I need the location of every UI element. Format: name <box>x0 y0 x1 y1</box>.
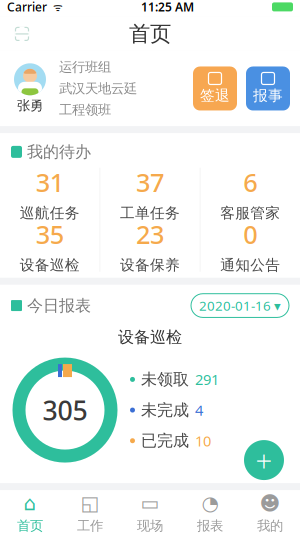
button[interactable]: 0 <box>201 220 300 272</box>
staticText: Carrier <box>7 0 47 15</box>
staticText: ◔ <box>201 492 218 515</box>
staticText: 今日报表 <box>27 296 91 315</box>
button[interactable]: ◱ <box>60 490 120 533</box>
staticText: 10 <box>195 431 211 450</box>
staticText: 设备巡检 <box>20 256 80 274</box>
button[interactable]: 6 <box>201 168 300 220</box>
button[interactable]: 31 <box>0 168 99 220</box>
staticText: 未领取 <box>141 370 189 389</box>
staticText: 37 <box>136 165 164 199</box>
staticText: 2020-01-16 ▾ <box>199 297 281 314</box>
button[interactable]: 2020-01-16 ▾ <box>191 294 289 317</box>
button[interactable]: 35 <box>0 220 99 272</box>
staticText: 设备保养 <box>120 256 180 274</box>
staticText: 已完成 <box>141 431 189 451</box>
staticText: 我的待办 <box>27 142 91 162</box>
staticText: ◱ <box>80 492 99 515</box>
staticText: 我的 <box>257 518 283 533</box>
button[interactable]: 37 <box>100 168 200 220</box>
staticText: 工单任务 <box>120 204 180 222</box>
staticText: 巡航任务 <box>20 204 80 222</box>
staticText: 首页 <box>129 21 171 47</box>
button[interactable]: 23 <box>100 220 200 272</box>
button[interactable]: ◔ <box>180 490 240 533</box>
staticText: 6 <box>243 165 257 199</box>
staticText: 报事 <box>253 86 283 104</box>
staticText: 客服管家 <box>220 204 280 222</box>
staticText: 23 <box>136 217 164 251</box>
staticText: ▭ <box>140 492 159 515</box>
staticText: 未完成 <box>141 400 189 420</box>
staticText: 现场 <box>137 518 163 533</box>
staticText: 设备巡检 <box>118 327 182 347</box>
staticText: 工程领班 <box>59 102 111 118</box>
staticText: ☻ <box>259 492 280 515</box>
button[interactable]: 报事 <box>246 66 290 110</box>
button[interactable]: 新增 <box>244 440 284 480</box>
staticText: 报表 <box>197 518 223 533</box>
staticText: 工作 <box>77 518 103 533</box>
staticText: 4 <box>195 400 203 420</box>
staticText: 签退 <box>200 86 230 104</box>
button[interactable]: 签退 <box>193 66 237 110</box>
button[interactable]: ▭ <box>120 490 180 533</box>
staticText: 通知公告 <box>220 256 280 274</box>
staticText: 0 <box>243 217 257 251</box>
staticText: ⌂ <box>23 492 36 515</box>
staticText: 首页 <box>17 518 43 533</box>
staticText: 35 <box>36 217 64 251</box>
staticText: 305 <box>42 392 87 428</box>
button[interactable]: ⌂ <box>0 490 60 533</box>
staticText: 11:25 AM <box>141 0 194 15</box>
button[interactable]: ☻ <box>240 490 300 533</box>
staticText: 张勇 <box>17 97 43 114</box>
staticText: 31 <box>36 165 64 199</box>
button[interactable]: 扫一扫 <box>6 18 38 50</box>
staticText: + <box>255 441 272 480</box>
staticText: 291 <box>195 370 219 389</box>
staticText: 武汉天地云廷 <box>59 80 137 97</box>
staticText: 运行班组 <box>59 59 111 75</box>
staticText: ᯤ <box>47 0 63 14</box>
